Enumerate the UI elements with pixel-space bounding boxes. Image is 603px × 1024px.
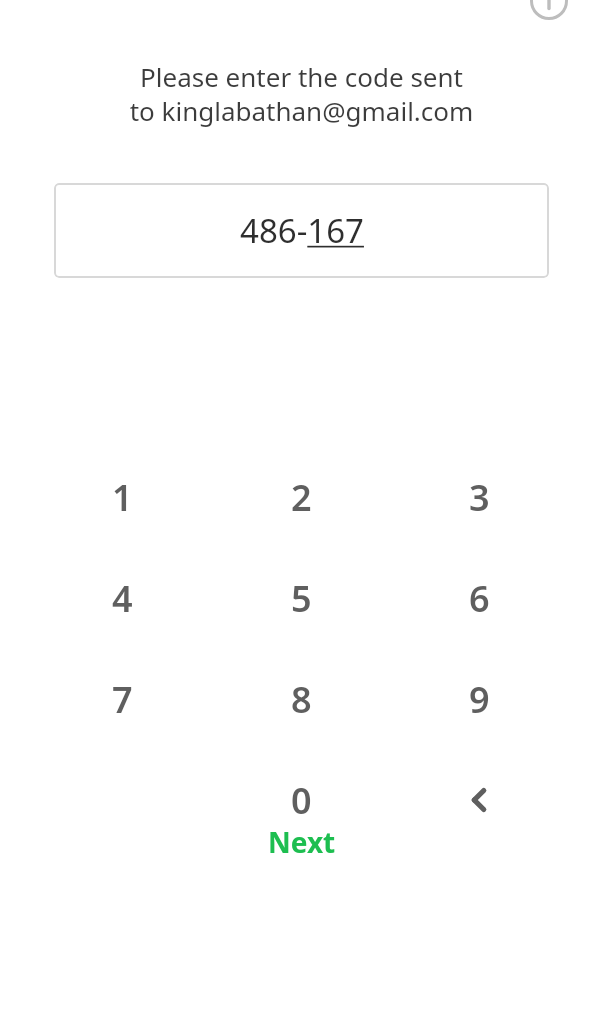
staticText: Next bbox=[268, 823, 336, 861]
staticText: 486-167 bbox=[240, 208, 364, 253]
staticText: 3 bbox=[469, 473, 490, 522]
staticText: 2 bbox=[291, 473, 312, 522]
button[interactable]: 3 bbox=[433, 451, 525, 543]
staticText: Please enter the code sent to kinglabath… bbox=[0, 59, 603, 128]
button[interactable]: 0 bbox=[255, 754, 347, 846]
button[interactable]: 4 bbox=[76, 552, 168, 644]
button[interactable]: 9 bbox=[433, 653, 525, 745]
button[interactable]: 2 bbox=[255, 451, 347, 543]
staticText: 4 bbox=[112, 574, 133, 623]
staticText: 8 bbox=[291, 675, 312, 724]
staticText: 5 bbox=[291, 574, 312, 623]
staticText: 7 bbox=[112, 675, 133, 724]
button[interactable]: Help information bbox=[530, 0, 568, 20]
button[interactable]: 1 bbox=[76, 451, 168, 543]
staticText: 1 bbox=[112, 473, 133, 522]
button[interactable]: 7 bbox=[76, 653, 168, 745]
button[interactable]: Next bbox=[222, 818, 382, 866]
button[interactable]: 8 bbox=[255, 653, 347, 745]
button[interactable]: 486-167 bbox=[54, 183, 549, 278]
staticText: 9 bbox=[469, 675, 490, 724]
staticText: 0 bbox=[291, 776, 312, 825]
staticText: 6 bbox=[469, 574, 490, 623]
button[interactable]: Backspace bbox=[433, 754, 525, 846]
button[interactable]: 5 bbox=[255, 552, 347, 644]
button[interactable]: 6 bbox=[433, 552, 525, 644]
